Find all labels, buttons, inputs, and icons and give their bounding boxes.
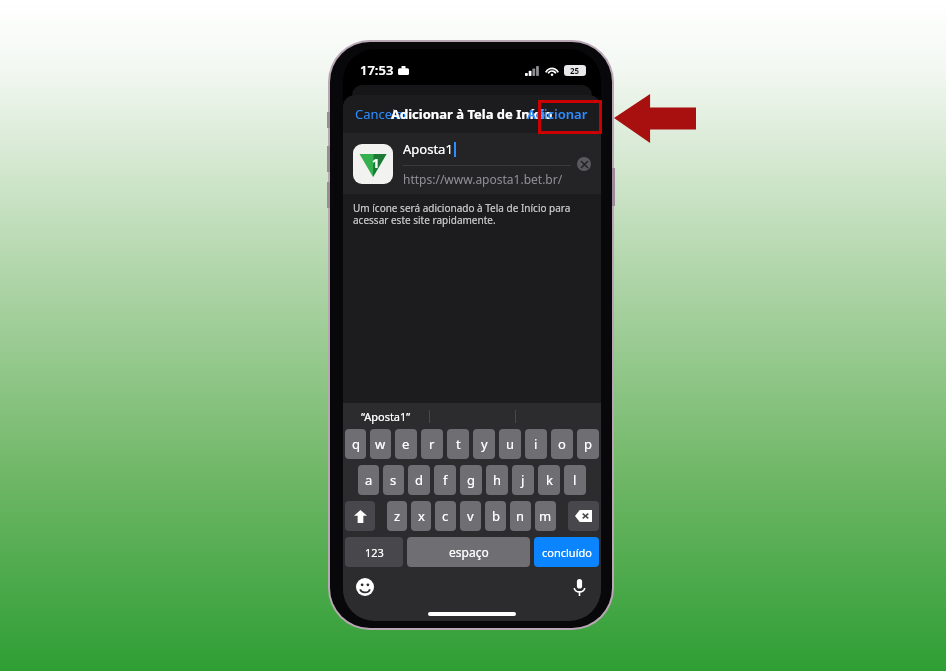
staticText: t: [456, 435, 461, 453]
button[interactable]: x: [411, 501, 431, 531]
button[interactable]: h: [486, 465, 508, 495]
button[interactable]: l: [564, 465, 586, 495]
staticText: Adicionar: [527, 105, 588, 123]
staticText: y: [481, 435, 488, 453]
staticText: Adicionar à Tela de Início: [391, 105, 553, 123]
staticText: r: [429, 435, 435, 453]
button[interactable]: k: [538, 465, 560, 495]
staticText: “Aposta1”: [361, 409, 411, 424]
staticText: Um ícone será adicionado à Tela de Iníci…: [353, 201, 573, 227]
button[interactable]: e: [395, 429, 417, 459]
button[interactable]: 123: [345, 537, 403, 567]
button[interactable]: Adicionar: [523, 101, 592, 127]
staticText: f: [443, 471, 448, 489]
staticText: 17:53: [360, 61, 394, 79]
button[interactable]: s: [383, 465, 404, 495]
button[interactable]: Cancelar: [351, 101, 413, 127]
button[interactable]: d: [408, 465, 430, 495]
staticText: w: [375, 435, 386, 453]
button[interactable]: r: [421, 429, 443, 459]
staticText: b: [492, 507, 500, 525]
staticText: i: [534, 435, 538, 453]
staticText: v: [467, 507, 474, 525]
staticText: https://www.aposta1.bet.br/: [403, 171, 563, 187]
button[interactable]: q: [345, 429, 366, 459]
button[interactable]: concluído: [534, 537, 599, 567]
staticText: concluído: [542, 545, 592, 560]
staticText: 1: [372, 154, 380, 172]
button[interactable]: i: [525, 429, 547, 459]
button[interactable]: g: [460, 465, 482, 495]
button[interactable]: Shift: [345, 501, 375, 531]
button[interactable]: y: [473, 429, 495, 459]
button[interactable]: espaço: [407, 537, 530, 567]
staticText: 123: [365, 545, 384, 560]
button[interactable]: z: [387, 501, 407, 531]
button[interactable]: o: [551, 429, 573, 459]
button[interactable]: t: [447, 429, 469, 459]
staticText: espaço: [449, 544, 489, 560]
button[interactable]: j: [512, 465, 534, 495]
button[interactable]: v: [460, 501, 481, 531]
staticText: n: [516, 507, 525, 525]
staticText: l: [573, 471, 577, 489]
button[interactable]: w: [370, 429, 391, 459]
staticText: a: [365, 471, 373, 489]
staticText: p: [584, 435, 592, 453]
button[interactable]: m: [535, 501, 556, 531]
button[interactable]: Emoji: [355, 577, 375, 597]
staticText: g: [467, 471, 475, 489]
staticText: Aposta1: [403, 140, 453, 158]
staticText: m: [539, 507, 552, 525]
button[interactable]: Apagar: [568, 501, 599, 531]
button[interactable]: p: [577, 429, 599, 459]
button[interactable]: a: [358, 465, 379, 495]
staticText: s: [390, 471, 397, 489]
button[interactable]: Limpar texto: [577, 157, 591, 171]
button[interactable]: u: [499, 429, 521, 459]
staticText: e: [402, 435, 410, 453]
staticText: d: [415, 471, 423, 489]
staticText: x: [418, 507, 425, 525]
button[interactable]: n: [510, 501, 531, 531]
button[interactable]: b: [485, 501, 506, 531]
staticText: j: [521, 471, 525, 489]
staticText: o: [558, 435, 566, 453]
staticText: k: [546, 471, 553, 489]
staticText: q: [352, 435, 360, 453]
staticText: u: [506, 435, 515, 453]
staticText: h: [493, 471, 502, 489]
button[interactable]: c: [435, 501, 456, 531]
staticText: z: [394, 507, 401, 525]
button[interactable]: f: [434, 465, 456, 495]
staticText: c: [442, 507, 449, 525]
button[interactable]: Ditado: [569, 577, 589, 597]
staticText: Cancelar: [355, 105, 409, 123]
staticText: 25: [570, 65, 580, 76]
